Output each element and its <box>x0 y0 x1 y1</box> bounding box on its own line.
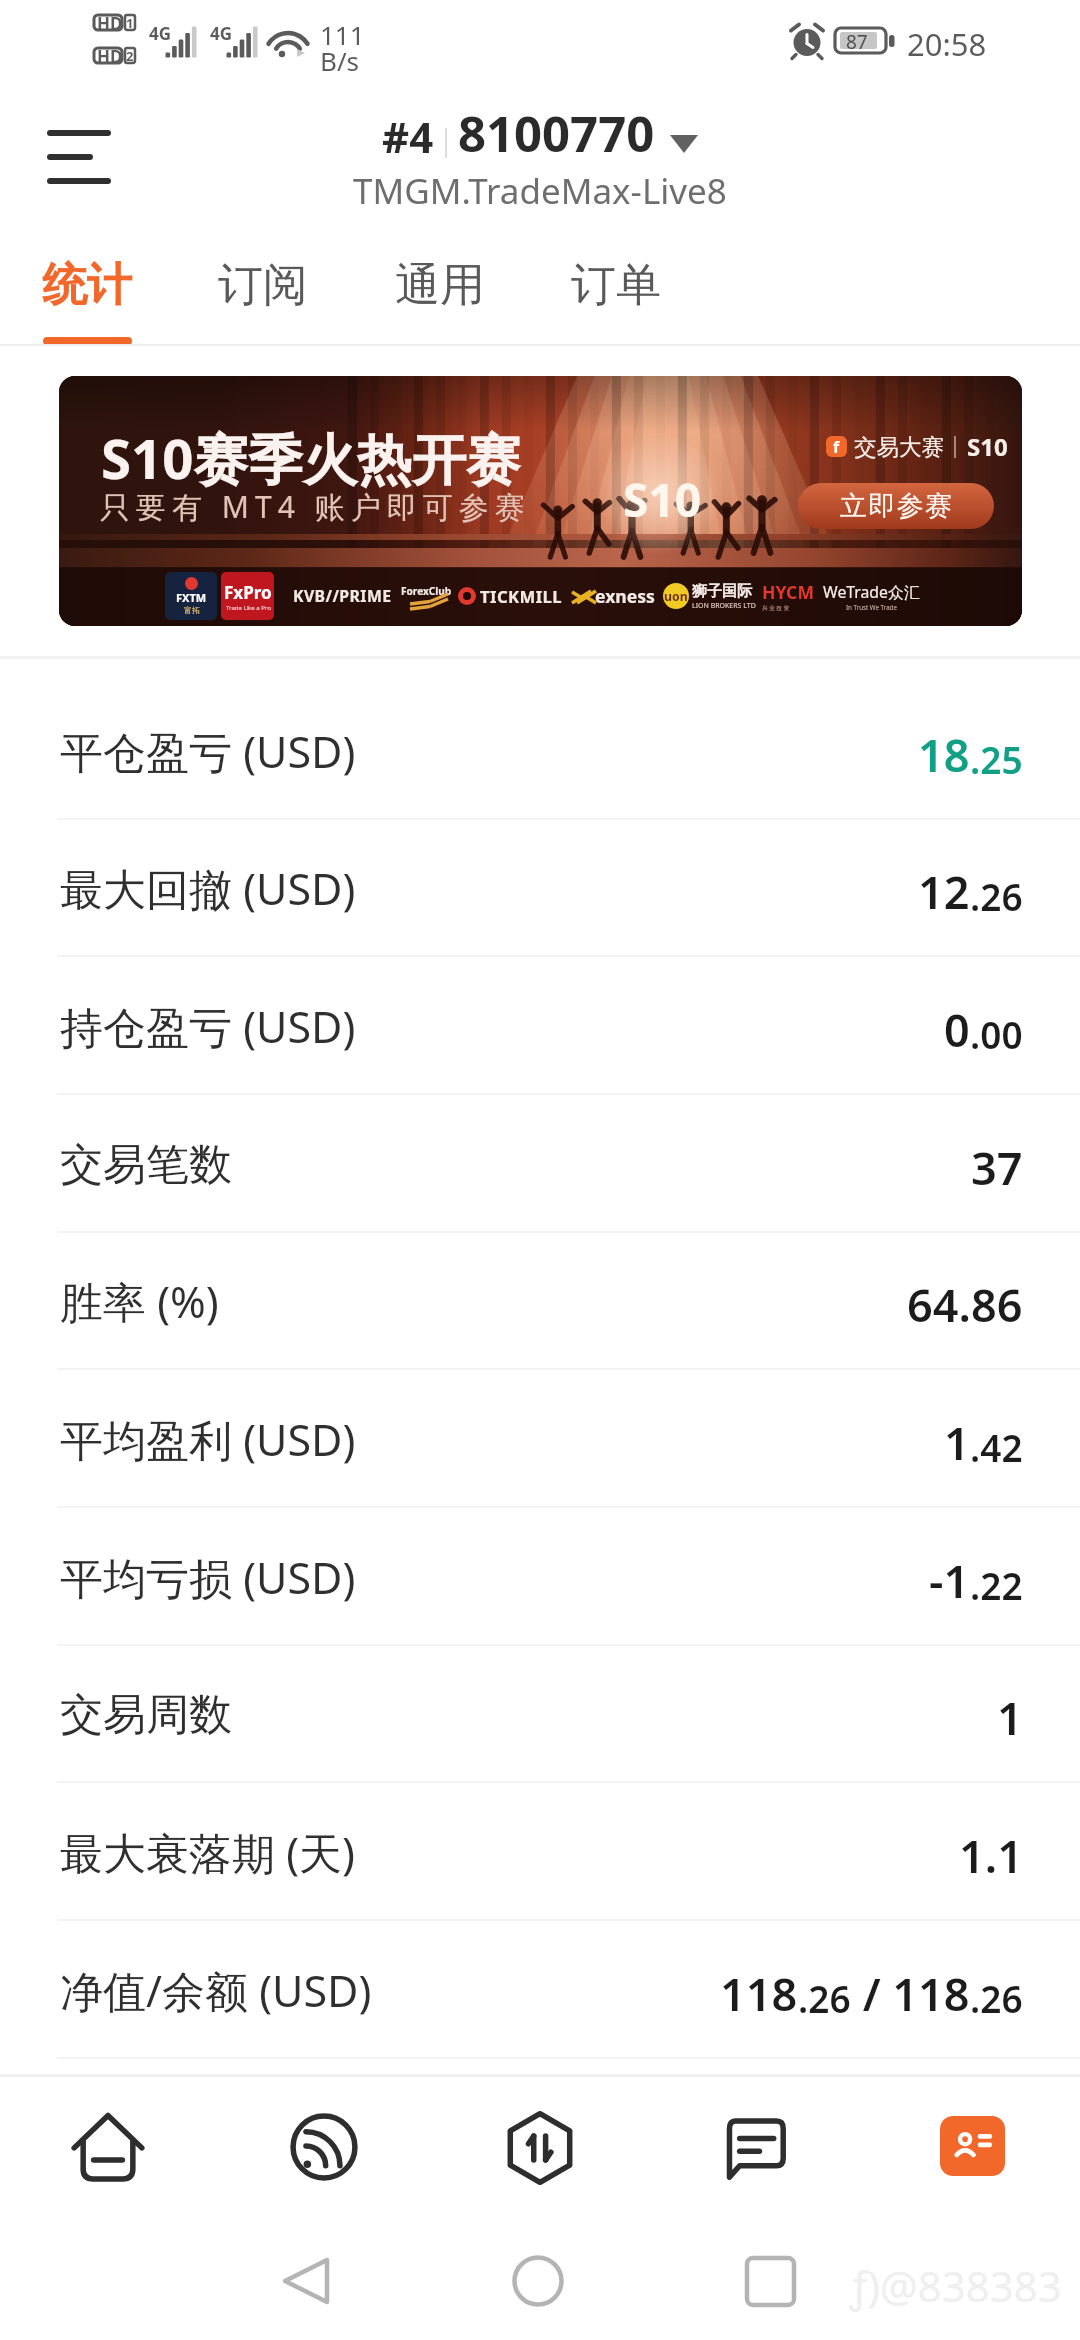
staticText: TMGM.TradeMax-Live8 <box>353 167 727 215</box>
staticText: 20:58 <box>907 23 987 65</box>
button[interactable]: 胜率 (%) <box>0 1233 1080 1370</box>
button[interactable]: Signals <box>216 2077 432 2229</box>
staticText: .42 <box>970 1422 1023 1472</box>
staticText: 富拓 <box>184 605 200 615</box>
staticText: 118 <box>720 1963 798 2024</box>
button[interactable]: 交易周数 <box>0 1646 1080 1783</box>
staticText: 平均亏损 (USD) <box>60 1548 356 1607</box>
button[interactable]: Profile <box>864 2077 1080 2229</box>
staticText: .22 <box>970 1560 1023 1610</box>
staticText: f <box>833 436 840 457</box>
staticText: 平仓盈亏 (USD) <box>60 722 356 781</box>
staticText: 狮子国际 <box>692 582 752 601</box>
staticText: 持仓盈亏 (USD) <box>60 997 356 1056</box>
staticText: 37 <box>971 1137 1023 1198</box>
staticText: 1.1 <box>959 1825 1023 1886</box>
staticText: 立即参赛 <box>839 489 953 523</box>
staticText: 1 <box>944 1412 970 1473</box>
button[interactable]: Menu <box>24 108 132 204</box>
staticText: HD <box>97 12 123 35</box>
button[interactable]: Trade <box>432 2077 648 2229</box>
button[interactable]: #4 <box>345 100 735 215</box>
button[interactable]: 平仓盈亏 (USD) <box>0 683 1080 820</box>
staticText: .25 <box>970 734 1023 784</box>
button[interactable]: 立即参赛 <box>798 483 994 529</box>
staticText: ƒ)@838383 <box>850 2257 1062 2314</box>
staticText: .26 <box>970 871 1023 921</box>
staticText: 2 <box>126 47 134 65</box>
button[interactable]: 净值/余额 (USD) <box>0 1922 1080 2059</box>
staticText: In Trust We Trade <box>846 603 897 611</box>
staticText: 交易周数 <box>60 1688 232 1742</box>
staticText: TICKMILL <box>480 585 562 608</box>
staticText: 交易大赛 <box>854 433 944 461</box>
staticText: 12 <box>918 861 970 922</box>
button[interactable]: Recents <box>700 2229 840 2340</box>
staticText: 87 <box>846 29 868 55</box>
staticText: 0 <box>944 999 970 1060</box>
staticText: 统计 <box>42 257 132 314</box>
button[interactable]: 订阅 <box>175 243 351 348</box>
button[interactable]: 通用 <box>352 243 528 348</box>
staticText: 最大衰落期 (天) <box>60 1823 355 1882</box>
button[interactable]: 持仓盈亏 (USD) <box>0 958 1080 1095</box>
staticText: ForexClub <box>401 584 452 598</box>
button[interactable]: 最大衰落期 (天) <box>0 1784 1080 1921</box>
staticText: WeTrade众汇 <box>823 581 920 603</box>
staticText: HYCM <box>762 580 815 604</box>
staticText: 交易笔数 <box>60 1138 232 1192</box>
staticText: 通用 <box>395 257 485 314</box>
staticText: 净值/余额 (USD) <box>60 1961 372 2020</box>
staticText: Trade Like a Pro <box>226 604 271 612</box>
staticText: #4 <box>382 108 434 165</box>
staticText: 订单 <box>571 257 661 314</box>
staticText: 只要有 MT4 账户即可参赛 <box>100 486 531 527</box>
staticText: .00 <box>970 1009 1023 1059</box>
staticText: 兴 业 投 资 <box>762 604 790 612</box>
button[interactable]: S10 赛季火热开赛 广告 <box>59 376 1022 626</box>
staticText: 4G <box>210 22 233 45</box>
staticText: 平均盈利 (USD) <box>60 1410 356 1469</box>
staticText: 胜率 (%) <box>60 1272 219 1331</box>
staticText: 111 <box>320 17 365 52</box>
button[interactable]: 订单 <box>528 243 704 348</box>
staticText: exness <box>595 584 655 608</box>
staticText: S10赛季火热开赛 <box>101 421 521 495</box>
staticText: FXTM <box>176 590 207 605</box>
button[interactable]: 交易笔数 <box>0 1096 1080 1233</box>
button[interactable]: 平均盈利 (USD) <box>0 1371 1080 1508</box>
staticText: S10 <box>967 430 1008 463</box>
staticText: / 118 <box>851 1963 970 2024</box>
staticText: .26 <box>970 1973 1023 2023</box>
staticText: LION BROKERS LTD <box>692 601 756 611</box>
staticText: .26 <box>798 1973 851 2023</box>
staticText: uon <box>664 588 688 605</box>
staticText: 订阅 <box>218 257 308 314</box>
staticText: 1 <box>997 1687 1023 1748</box>
staticText: HD <box>97 45 123 68</box>
staticText: 18 <box>918 724 970 785</box>
button[interactable]: 最大回撤 (USD) <box>0 820 1080 957</box>
staticText: 最大回撤 (USD) <box>60 859 356 918</box>
staticText: KVB//PRIME <box>293 585 392 607</box>
staticText: FxPro <box>224 581 272 604</box>
staticText: B/s <box>320 43 360 78</box>
button[interactable]: Home <box>0 2077 216 2229</box>
button[interactable]: Back <box>246 2229 386 2340</box>
staticText: 1 <box>126 14 134 32</box>
button[interactable]: Messages <box>648 2077 864 2229</box>
staticText: -1 <box>929 1550 970 1611</box>
staticText: 8100770 <box>458 100 655 167</box>
staticText: 64.86 <box>907 1274 1023 1335</box>
staticText: 4G <box>149 22 172 45</box>
staticText: S10 <box>623 468 701 531</box>
button[interactable]: Home <box>470 2229 610 2340</box>
button[interactable]: 平均亏损 (USD) <box>0 1509 1080 1646</box>
button[interactable]: 统计 <box>0 243 175 348</box>
